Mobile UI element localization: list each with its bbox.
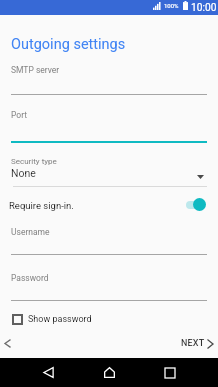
staticText: None [11,167,36,179]
button[interactable]: Home [101,364,118,381]
staticText: SMTP server [11,65,60,75]
staticText: Password [11,273,49,283]
staticText: Show password [28,314,92,325]
staticText: Port [11,110,28,120]
staticText: 10:00 [191,2,217,14]
staticText: NEXT [181,338,205,349]
staticText: Outgoing settings [11,36,126,53]
button[interactable]: Recent apps [161,364,178,381]
button[interactable]: Previous [1,337,14,350]
staticText: 100% [164,2,179,9]
staticText: Security type [11,157,57,166]
staticText: Username [11,227,50,237]
button[interactable]: Back [40,364,57,381]
button[interactable]: Require sign-in toggle [185,197,209,212]
staticText: Require sign-in. [9,200,74,211]
button[interactable]: Show password [12,314,92,325]
button[interactable]: NEXT [181,338,213,349]
